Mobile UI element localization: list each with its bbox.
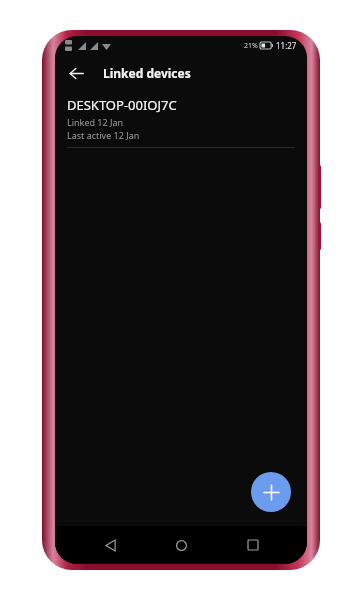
staticText: Linked 12 Jan [67,116,124,128]
staticText: 21% [244,41,258,51]
staticText: DESKTOP-00IOJ7C [67,96,177,114]
staticText: Linked devices [103,65,191,81]
button[interactable]: Recents [236,528,270,562]
button[interactable]: Home [164,528,198,562]
button[interactable]: Back [61,58,91,88]
staticText: Last active 12 Jan [67,129,140,141]
button[interactable]: DESKTOP-00IOJ7C [55,92,307,154]
staticText: 11:27 [276,40,297,51]
button[interactable]: Add device [251,472,291,512]
button[interactable]: Back [93,528,127,562]
